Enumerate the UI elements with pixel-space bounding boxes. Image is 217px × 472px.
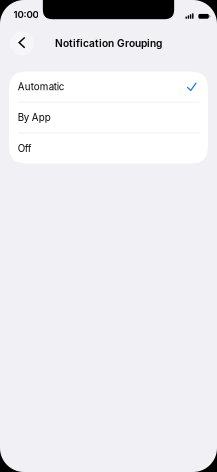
button[interactable]: Automatic [9, 71, 208, 102]
button[interactable]: By App [9, 102, 208, 133]
staticText: Automatic [18, 81, 65, 93]
staticText: Off [18, 143, 32, 154]
staticText: 10:00 [13, 9, 38, 20]
button[interactable]: Back [7, 28, 37, 58]
staticText: By App [18, 112, 51, 123]
button[interactable]: Off [9, 133, 208, 164]
staticText: Notification Grouping [55, 37, 162, 49]
